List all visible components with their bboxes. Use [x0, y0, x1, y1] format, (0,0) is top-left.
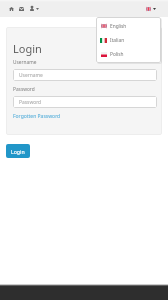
button[interactable]: Home	[6, 2, 16, 15]
button[interactable]: Account	[28, 2, 39, 15]
button[interactable]: Password	[13, 96, 157, 108]
button[interactable]: Messages	[16, 2, 26, 15]
staticText: Login	[13, 41, 42, 56]
staticText: Password	[19, 99, 42, 106]
button[interactable]: Username	[13, 69, 157, 81]
staticText: Username	[19, 72, 43, 79]
button[interactable]: Polish	[96, 47, 161, 61]
button[interactable]: Forgotten Password	[13, 113, 61, 120]
button[interactable]: Select language	[144, 3, 156, 14]
button[interactable]: English	[96, 19, 161, 33]
button[interactable]: Italian	[96, 33, 161, 47]
staticText: Polish	[110, 51, 124, 58]
staticText: Username	[13, 59, 37, 66]
staticText: Password	[13, 86, 35, 93]
button[interactable]: Login	[6, 144, 30, 158]
staticText: Login	[11, 148, 25, 155]
staticText: English	[110, 23, 127, 30]
staticText: Italian	[110, 37, 125, 44]
